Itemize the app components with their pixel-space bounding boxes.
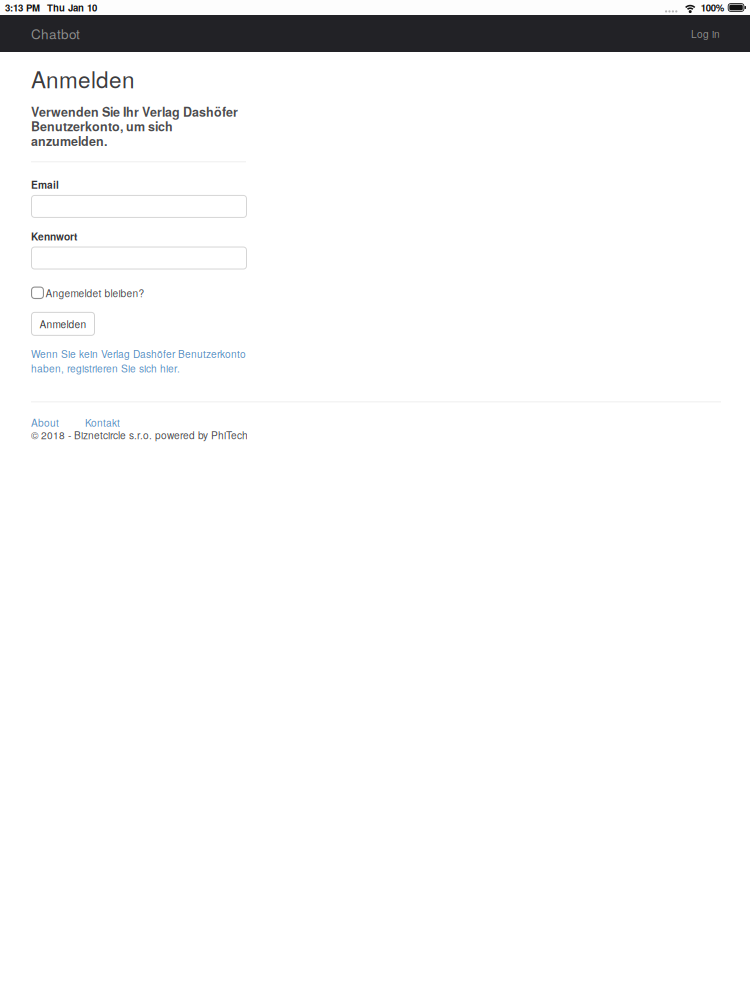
staticText: Kennwort [31, 229, 77, 243]
button[interactable]: Angemeldet bleiben? [31, 285, 144, 300]
staticText: Angemeldet bleiben? [45, 285, 144, 300]
staticText: Email [31, 177, 59, 192]
staticText: Log in [691, 26, 720, 41]
button[interactable]: Anmelden [31, 312, 95, 336]
staticText: © 2018 - Biznetcircle s.r.o. powered by … [31, 428, 248, 442]
staticText: Thu Jan 10 [47, 1, 97, 14]
staticText: Chatbot [31, 24, 80, 43]
staticText: Kontakt [85, 415, 120, 430]
button[interactable]: Chatbot [0, 15, 94, 52]
staticText: Verwenden Sie Ihr Verlag Dashöfer Benutz… [31, 103, 238, 150]
button[interactable]: Kontakt [85, 415, 120, 430]
button[interactable]: About [31, 415, 59, 430]
button[interactable]: Wenn Sie kein Verlag Dashöfer Benutzerko… [31, 346, 254, 375]
staticText: About [31, 415, 59, 430]
staticText: 3:13 PM [5, 1, 40, 14]
staticText: Wenn Sie kein Verlag Dashöfer Benutzerko… [31, 346, 246, 375]
staticText: 100% [701, 1, 725, 14]
staticText: Anmelden [39, 317, 86, 331]
staticText: Anmelden [31, 62, 135, 95]
button[interactable]: Log in [677, 15, 750, 52]
